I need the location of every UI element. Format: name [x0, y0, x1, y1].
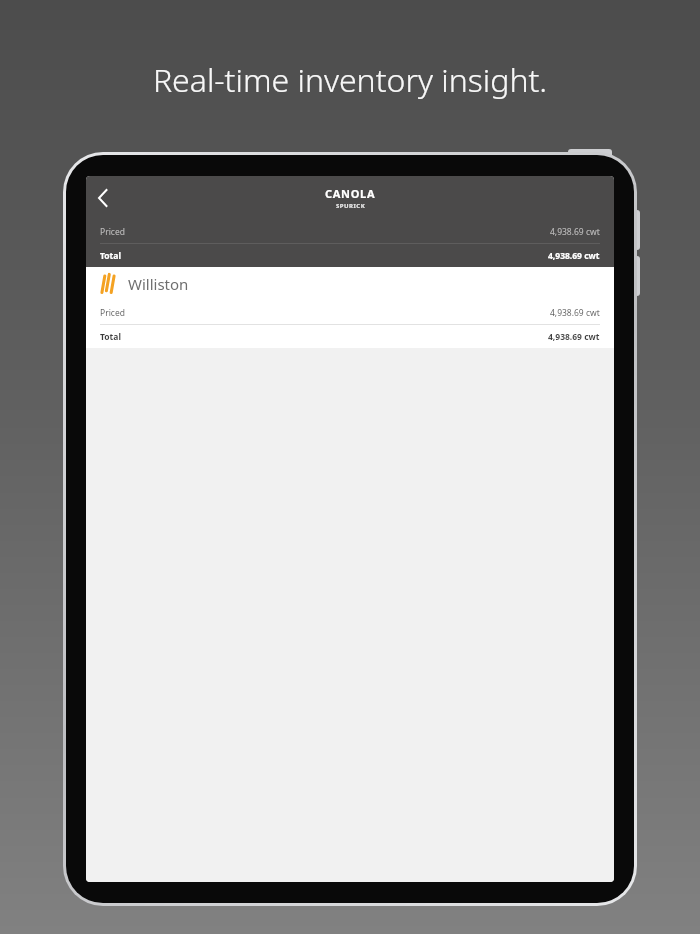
- staticText: Williston: [128, 274, 189, 294]
- button[interactable]: Priced: [86, 220, 614, 243]
- staticText: 4,938.69 cwt: [548, 250, 600, 262]
- staticText: Priced: [100, 226, 125, 238]
- staticText: SPURICK: [336, 202, 366, 210]
- staticText: 4,938.69 cwt: [550, 307, 600, 319]
- button[interactable]: Priced: [86, 301, 614, 324]
- staticText: Priced: [100, 307, 125, 319]
- staticText: Real-time inventory insight.: [0, 58, 700, 102]
- staticText: CANOLA: [325, 186, 376, 201]
- button[interactable]: Total: [86, 244, 614, 267]
- button[interactable]: Total: [86, 325, 614, 348]
- button[interactable]: Williston: [86, 267, 614, 301]
- staticText: Total: [100, 331, 121, 343]
- staticText: Total: [100, 250, 121, 262]
- staticText: 4,938.69 cwt: [548, 331, 600, 343]
- staticText: 4,938.69 cwt: [550, 226, 600, 238]
- button[interactable]: Back: [86, 181, 120, 215]
